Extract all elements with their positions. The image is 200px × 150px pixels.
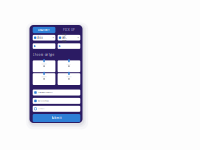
staticText: SMALL: [66, 63, 71, 65]
button[interactable]: Comment: [33, 106, 80, 112]
button[interactable]: PICK UP: [58, 27, 80, 33]
staticText: Comment: [38, 108, 44, 110]
button[interactable]: Kazakhstan: [58, 35, 80, 40]
staticText: Activate the company ?: [38, 92, 53, 93]
button[interactable]: [33, 43, 55, 49]
button[interactable]: SMALL: [58, 60, 80, 72]
button[interactable]: Asia: [33, 35, 55, 40]
staticText: Submit: [51, 116, 61, 120]
button[interactable]: Activate the company ?: [33, 89, 80, 95]
staticText: Kazakhstan: [62, 32, 67, 43]
staticText: Choose car type: [33, 53, 55, 56]
staticText: DELIVERY: [38, 28, 50, 32]
staticText: TRUCK: [66, 76, 71, 78]
staticText: PICK UP: [63, 28, 75, 32]
button[interactable]: Improve officials: [33, 98, 80, 104]
staticText: SEDAN: [41, 76, 46, 78]
button[interactable]: Submit: [33, 114, 80, 122]
button[interactable]: [58, 43, 80, 49]
button[interactable]: DELIVERY: [33, 27, 55, 33]
staticText: Asia: [37, 36, 42, 39]
button[interactable]: SEDAN: [33, 73, 55, 85]
button[interactable]: TRUCK: [58, 73, 80, 85]
staticText: Improve officials: [38, 100, 49, 102]
button[interactable]: SEDAN: [33, 60, 55, 72]
